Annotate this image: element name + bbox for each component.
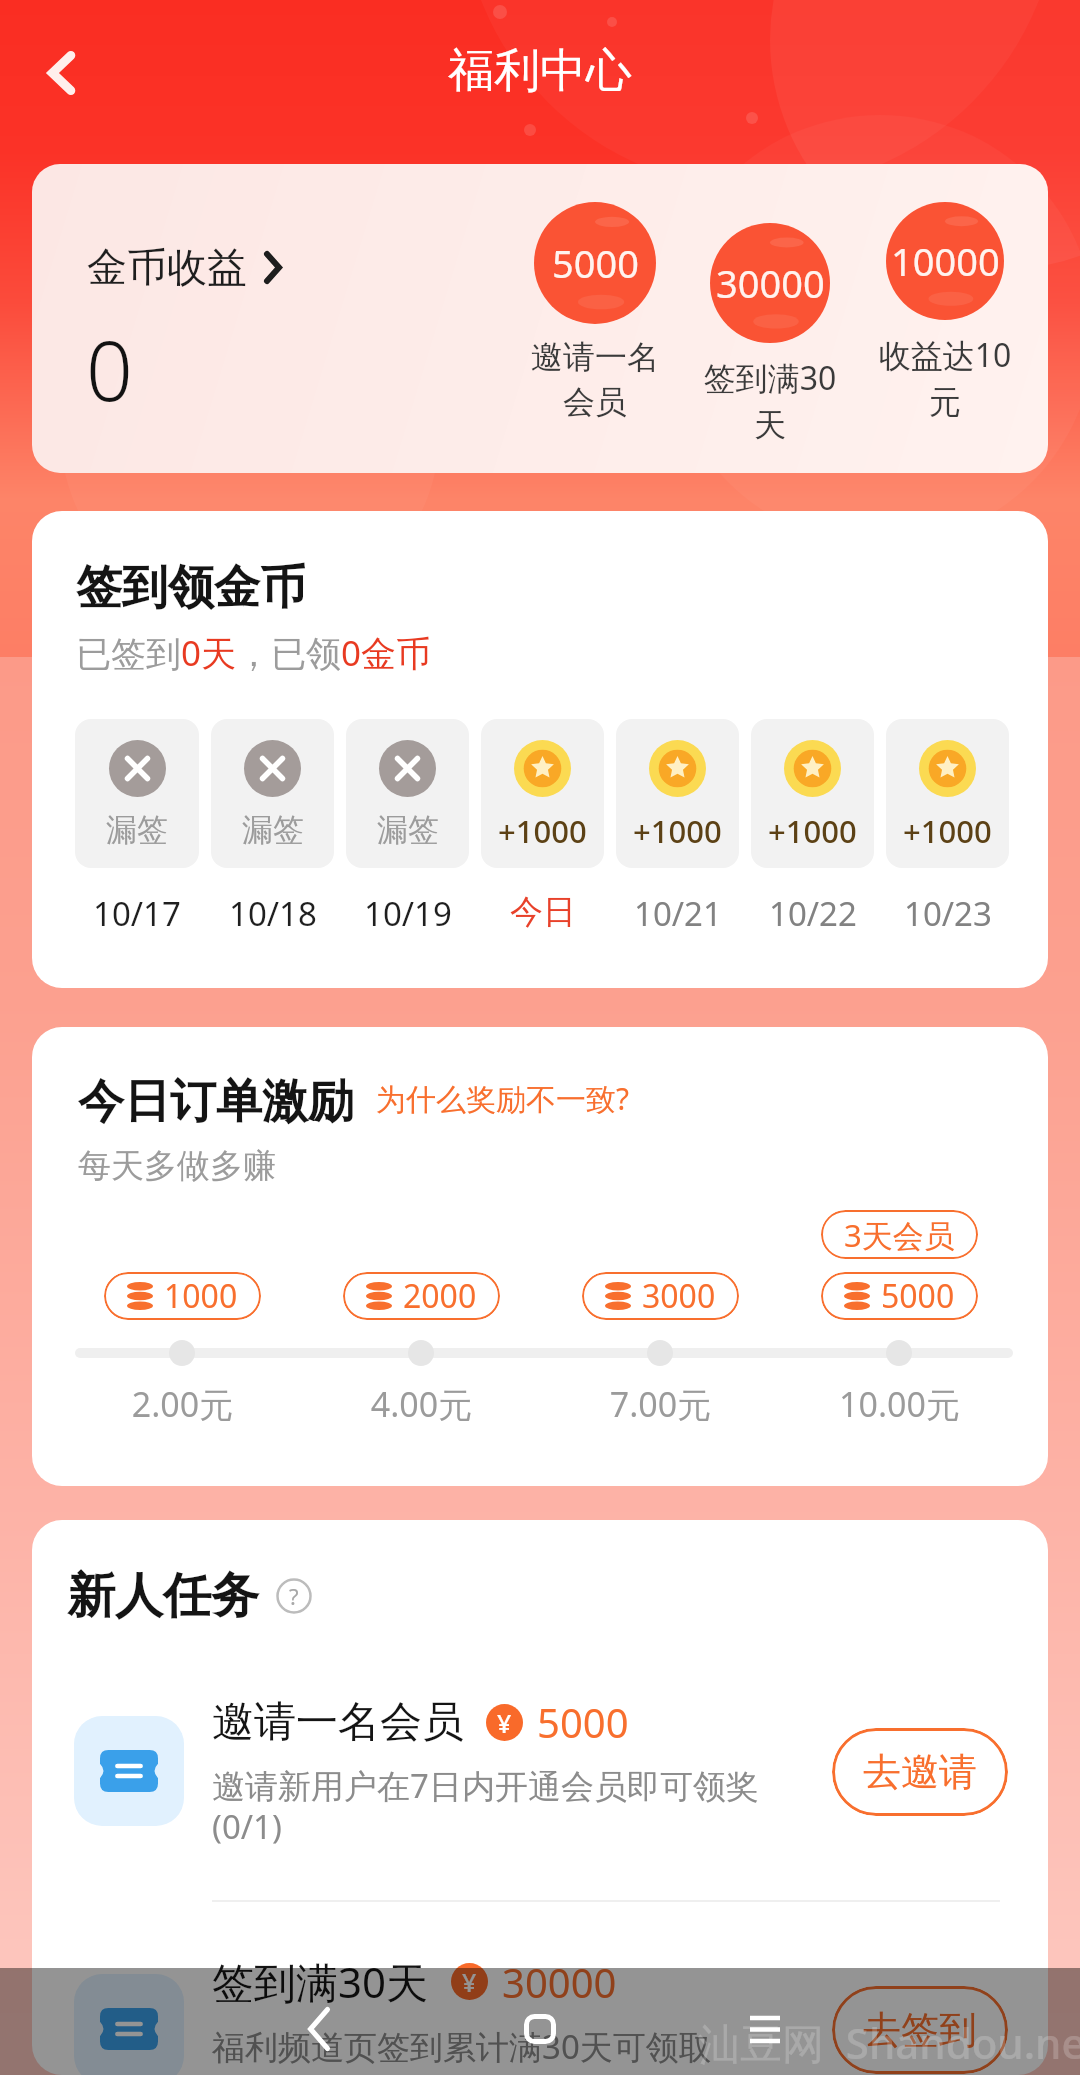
staticText: 5000 xyxy=(881,1274,955,1318)
button[interactable]: 10000 xyxy=(860,202,1030,423)
staticText: 签到满30 天 xyxy=(685,356,855,446)
staticText: ¥ xyxy=(497,1706,512,1740)
button[interactable]: 2000 xyxy=(343,1272,500,1320)
button[interactable]: Home xyxy=(490,1979,590,2075)
staticText: 签到领金币 xyxy=(76,559,306,617)
button[interactable]: +1000 xyxy=(616,719,739,936)
staticText: 去邀请 xyxy=(863,1748,977,1796)
button[interactable]: 漏签 xyxy=(75,719,199,936)
staticText: 漏签 xyxy=(242,810,304,849)
staticText: 收益达10 元 xyxy=(860,333,1030,423)
button[interactable]: Back xyxy=(269,1979,369,2075)
staticText: 3天会员 xyxy=(844,1214,955,1256)
staticText: 0 xyxy=(86,313,133,425)
button[interactable]: 去邀请 xyxy=(832,1728,1008,1816)
staticText: 邀请一名会员 xyxy=(212,1696,464,1749)
staticText: 10/21 xyxy=(634,891,722,936)
staticText: 1000 xyxy=(164,1274,238,1318)
staticText: +1000 xyxy=(633,810,722,852)
staticText: 10/22 xyxy=(769,891,857,936)
staticText: 10/23 xyxy=(904,891,992,936)
staticText: 新人任务 xyxy=(67,1566,259,1626)
staticText: +1000 xyxy=(903,810,992,852)
staticText: 邀请一名 会员 xyxy=(510,337,680,423)
staticText: 今日 xyxy=(510,891,576,933)
staticText: 30000 xyxy=(716,257,825,309)
staticText: ? xyxy=(289,1581,299,1611)
staticText: 2.00元 xyxy=(104,1381,261,1427)
button[interactable]: Back xyxy=(26,37,98,109)
staticText: 5000 xyxy=(552,237,639,289)
button[interactable]: 1000 xyxy=(104,1272,261,1320)
staticText: 3000 xyxy=(642,1274,716,1318)
button[interactable]: Recents xyxy=(715,1979,815,2075)
staticText: 10/18 xyxy=(229,891,317,936)
staticText: 去签到 xyxy=(863,2006,977,2054)
button[interactable]: +1000 xyxy=(481,719,604,933)
staticText: 福利中心 xyxy=(448,42,632,100)
staticText: 福利频道页签到累计满30天可领取 xyxy=(212,2024,712,2069)
staticText: 汕豆网 Shandou.net xyxy=(698,2014,1080,2071)
staticText: 邀请新用户在7日内开通会员即可领奖 (0/1) xyxy=(212,1763,759,1849)
staticText: 为什么奖励不一致? xyxy=(376,1078,630,1119)
staticText: 4.00元 xyxy=(343,1381,500,1427)
staticText: 已签到0天，已领0金币 xyxy=(76,629,432,677)
staticText: 10/17 xyxy=(93,891,181,936)
staticText: 10000 xyxy=(891,235,1000,287)
staticText: 签到满30天 xyxy=(212,1953,429,2010)
button[interactable]: +1000 xyxy=(751,719,874,936)
staticText: 10/19 xyxy=(364,891,452,936)
button[interactable]: 金币收益 xyxy=(87,242,282,292)
staticText: +1000 xyxy=(498,810,587,852)
staticText: 5000 xyxy=(537,1695,629,1749)
staticText: 10.00元 xyxy=(821,1381,978,1427)
staticText: 每天多做多赚 xyxy=(78,1145,276,1187)
button[interactable]: 5000 xyxy=(510,202,680,423)
staticText: 今日订单激励 xyxy=(78,1073,354,1131)
button[interactable]: +1000 xyxy=(886,719,1009,936)
button[interactable]: 漏签 xyxy=(211,719,334,936)
button[interactable]: 为什么奖励不一致? xyxy=(376,1078,630,1131)
staticText: 2000 xyxy=(403,1274,477,1318)
button[interactable]: 3天会员 xyxy=(821,1210,978,1259)
button[interactable]: Help xyxy=(275,1577,313,1615)
button[interactable]: 去签到 xyxy=(832,1986,1008,2074)
button[interactable]: 漏签 xyxy=(346,719,469,936)
button[interactable]: 5000 xyxy=(821,1272,978,1320)
button[interactable]: 3000 xyxy=(582,1272,739,1320)
staticText: +1000 xyxy=(768,810,857,852)
staticText: 漏签 xyxy=(106,810,168,849)
staticText: 30000 xyxy=(502,1955,617,2009)
staticText: 金币收益 xyxy=(87,242,247,292)
staticText: ¥ xyxy=(462,1965,477,1999)
staticText: 7.00元 xyxy=(582,1381,739,1427)
button[interactable]: 30000 xyxy=(685,223,855,446)
staticText: 漏签 xyxy=(377,810,439,849)
